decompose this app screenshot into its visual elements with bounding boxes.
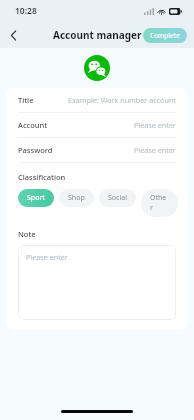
button[interactable]: Complete <box>143 28 187 43</box>
staticText: Other <box>150 193 169 213</box>
staticText: Please enter <box>134 145 176 155</box>
button[interactable]: Shop <box>59 189 94 207</box>
button[interactable]: Back <box>0 22 26 48</box>
staticText: Classification <box>18 172 66 182</box>
staticText: 10:28 <box>15 5 37 17</box>
button[interactable]: Sport <box>18 189 54 207</box>
button[interactable]: Other <box>141 189 178 217</box>
staticText: Please enter <box>134 120 176 130</box>
staticText: Title <box>18 95 34 105</box>
button[interactable]: Social <box>99 189 136 207</box>
staticText: Password <box>18 145 53 155</box>
staticText: Sport <box>27 193 45 203</box>
staticText: Note <box>18 229 36 239</box>
button[interactable]: Title <box>6 88 188 112</box>
staticText: Account manager <box>53 28 142 42</box>
staticText: Complete <box>150 31 180 40</box>
staticText: Please enter <box>26 252 68 262</box>
button[interactable]: Please enter <box>18 245 176 320</box>
staticText: Account <box>18 120 48 130</box>
button[interactable]: Account <box>6 113 188 137</box>
staticText: Social <box>108 193 127 203</box>
button[interactable]: Password <box>6 138 188 162</box>
staticText: Shop <box>68 193 85 203</box>
staticText: Example: Work number account <box>68 95 176 105</box>
